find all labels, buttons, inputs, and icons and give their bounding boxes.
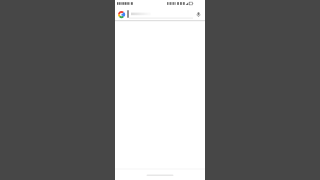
button[interactable]: Voice search [194, 10, 203, 19]
button[interactable]: Search [117, 9, 203, 19]
button[interactable]: Google [117, 10, 126, 19]
